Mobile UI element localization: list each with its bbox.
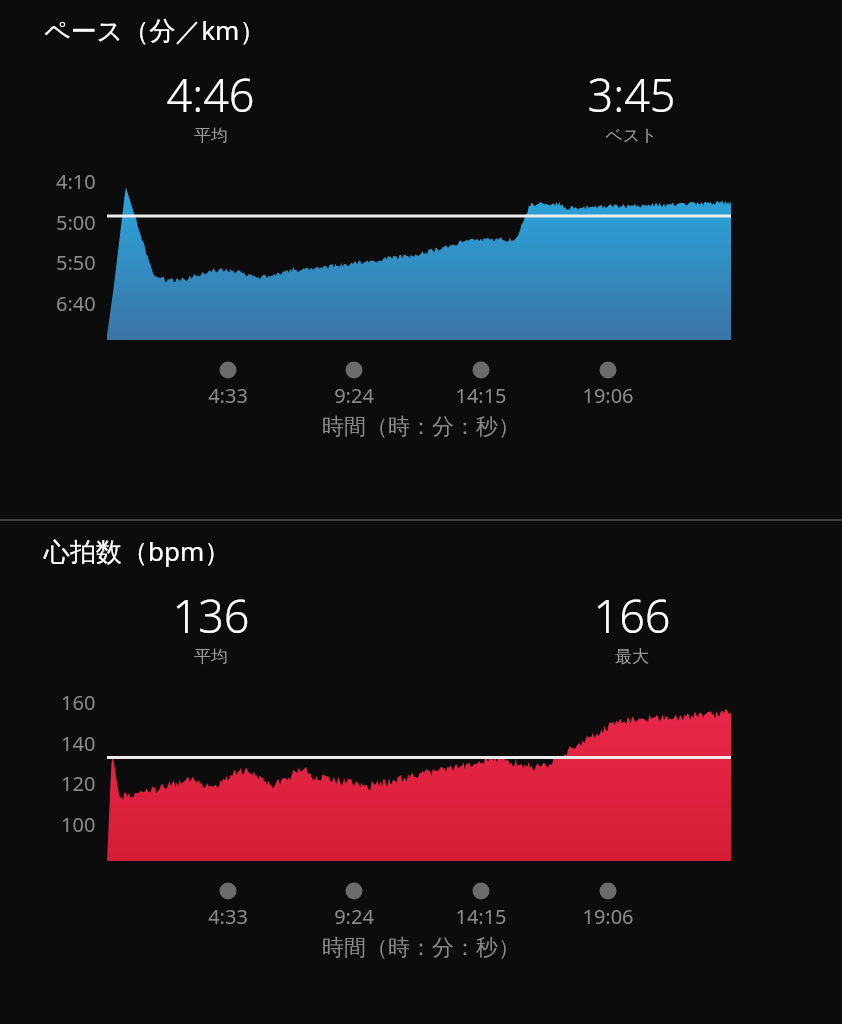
staticText: 平均 xyxy=(194,125,228,146)
staticText: 140 xyxy=(61,730,96,757)
button[interactable]: 166 xyxy=(421,585,842,689)
staticText: 最大 xyxy=(615,646,649,667)
button[interactable]: 4:46 xyxy=(0,64,421,168)
staticText: 100 xyxy=(61,811,96,838)
staticText: 5:00 xyxy=(56,209,96,236)
other: Pace and heart rate activity charts xyxy=(0,0,842,1024)
staticText: 9:24 xyxy=(334,903,374,930)
staticText: ペース（分／km） xyxy=(44,12,266,48)
staticText: 160 xyxy=(61,689,96,716)
staticText: 9:24 xyxy=(334,382,374,409)
staticText: 平均 xyxy=(194,646,228,667)
button[interactable]: ペース（分／km） xyxy=(44,12,266,48)
staticText: 4:46 xyxy=(166,64,255,125)
staticText: 心拍数（bpm） xyxy=(44,533,231,569)
staticText: 6:40 xyxy=(56,290,96,317)
staticText: 136 xyxy=(172,585,250,646)
staticText: 14:15 xyxy=(455,903,507,930)
staticText: 166 xyxy=(593,585,671,646)
staticText: ベスト xyxy=(605,125,658,146)
staticText: 120 xyxy=(61,770,96,797)
staticText: 3:45 xyxy=(587,64,676,125)
button[interactable]: 136 xyxy=(0,585,421,689)
staticText: 4:33 xyxy=(208,903,248,930)
staticText: 時間（時：分：秒） xyxy=(322,934,520,962)
staticText: 19:06 xyxy=(582,382,634,409)
staticText: 19:06 xyxy=(582,903,634,930)
staticText: 時間（時：分：秒） xyxy=(322,413,520,441)
staticText: 5:50 xyxy=(56,249,96,276)
staticText: 4:33 xyxy=(208,382,248,409)
button[interactable]: 3:45 xyxy=(421,64,842,168)
staticText: 4:10 xyxy=(56,168,96,195)
button[interactable]: 心拍数（bpm） xyxy=(44,533,231,569)
staticText: 14:15 xyxy=(455,382,507,409)
